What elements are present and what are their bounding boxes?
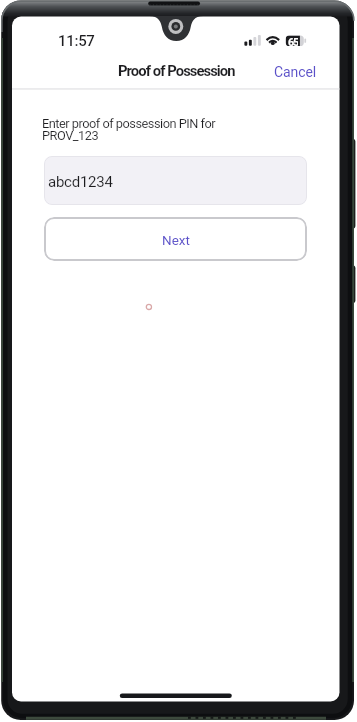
staticText: 65 xyxy=(288,36,298,46)
staticText: Next xyxy=(162,232,190,248)
staticText: abcd1234 xyxy=(48,173,113,191)
staticText: Enter proof of possession PIN for xyxy=(42,116,216,131)
staticText: Cancel xyxy=(274,64,317,80)
staticText: Proof of Possession xyxy=(118,62,235,79)
staticText: PROV_123 xyxy=(42,128,99,143)
button[interactable]: Cancel xyxy=(267,59,323,85)
button[interactable]: abcd1234 xyxy=(44,156,307,205)
staticText: 11:57 xyxy=(58,32,95,50)
button[interactable]: Next xyxy=(44,217,307,261)
